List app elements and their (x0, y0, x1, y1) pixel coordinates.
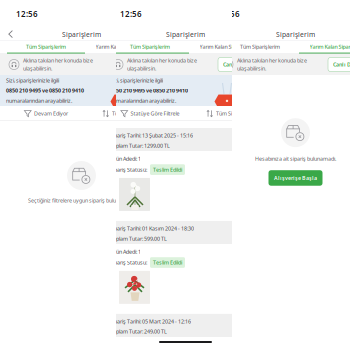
staticText: Sipariş Tarihi: 01 Kasım 2024 - 18:30 (110, 225, 194, 232)
staticText: Sizi, siparişlerinizle ilgili (6, 77, 59, 84)
staticText: Tüm Siparişler (112, 110, 146, 117)
staticText: Sipariş Statüsü: (110, 166, 147, 173)
button[interactable]: Canlı Destek (328, 57, 350, 72)
staticText: Siparişlerim (166, 30, 205, 39)
staticText: Tüm Siparişler (216, 110, 250, 117)
staticText: Alışverişe Başla (274, 174, 317, 181)
button[interactable]: Tüm Siparişler (189, 106, 267, 121)
staticText: Ürün Adedi: 1 (110, 155, 141, 162)
button[interactable]: Geri (0, 28, 21, 41)
staticText: Hesabınıza ait sipariş bulunamadı. (255, 155, 336, 162)
staticText: Canlı Destek (333, 61, 350, 68)
staticText: Sipariş Statüsü: (110, 259, 147, 266)
staticText: Sizi, siparişlerinizle ilgili (110, 77, 163, 84)
button[interactable]: Tüm Siparişlerim (111, 41, 189, 54)
staticText: Toplam Tutar: 1299,00 TL (110, 142, 170, 149)
button[interactable]: Tüm Siparişlerim (7, 41, 85, 54)
staticText: Toplam Tutar: 249,00 TL (110, 328, 167, 335)
staticText: Siparişlerim (276, 30, 315, 39)
button[interactable]: Canlı Destek (218, 57, 260, 72)
button[interactable]: Yarım Kalan Siparişlerim (85, 41, 163, 54)
staticText: Yarım Kalan Siparişlerim (199, 43, 256, 50)
staticText: ulaşabilirsin. (23, 65, 52, 72)
staticText: Tüm Siparişlerim (26, 43, 66, 50)
staticText: ulaşabilirsin. (127, 65, 156, 72)
staticText: Devam Ediyor (34, 110, 68, 117)
staticText: numaralarından arayabiliriz. (6, 97, 72, 104)
staticText: Toplam Tutar: 599,00 TL (110, 235, 167, 242)
button[interactable]: Devam Ediyor (7, 106, 85, 121)
button[interactable]: Tüm Siparişlerim (221, 41, 299, 54)
staticText: Canlı Destek (223, 61, 255, 68)
staticText: Aklına takılan her konuda bize (23, 57, 93, 64)
staticText: Aklına takılan her konuda bize (237, 57, 307, 64)
button[interactable]: Yarım Kalan Siparişlerim (299, 41, 350, 54)
button[interactable]: Tüm Siparişler (85, 106, 163, 121)
staticText: Tüm Siparişlerim (130, 43, 170, 50)
staticText: Yarım Kalan Siparişlerim (309, 43, 350, 50)
staticText: Seçtiğiniz filtrelere uygun sipariş bulu… (28, 197, 135, 204)
staticText: ulaşabilirsin. (237, 65, 266, 72)
staticText: Aklına takılan her konuda bize (127, 57, 197, 64)
staticText: Teslim Edildi (153, 166, 182, 173)
button[interactable]: Alışverişe Başla (268, 170, 322, 186)
button[interactable]: Statüye Göre Filtrele (111, 106, 189, 121)
staticText: Ürün Adedi: 1 (110, 248, 141, 255)
staticText: Siparişlerim (62, 30, 101, 39)
staticText: 0850 210 9495 ve 0850 210 9410 (110, 87, 188, 94)
staticText: Sipariş Tarihi: 13 Şubat 2025 - 15:16 (110, 132, 193, 139)
staticText: 12:56 (16, 9, 38, 19)
staticText: 56 (230, 9, 240, 19)
staticText: Tüm Siparişlerim (240, 43, 280, 50)
button[interactable]: Yarım Kalan Siparişlerim (189, 41, 267, 54)
staticText: Statüye Göre Filtrele (131, 110, 180, 117)
staticText: 12:56 (120, 9, 142, 19)
staticText: Sipariş Tarihi: 05 Mart 2024 - 12:16 (110, 318, 191, 325)
staticText: numaralarından arayabiliriz. (110, 97, 176, 104)
staticText: Teslim Edildi (153, 259, 182, 266)
staticText: 0850 210 9495 ve 0850 210 9410 (6, 87, 84, 94)
staticText: Yarım Kalan Siparişlerim (95, 43, 152, 50)
